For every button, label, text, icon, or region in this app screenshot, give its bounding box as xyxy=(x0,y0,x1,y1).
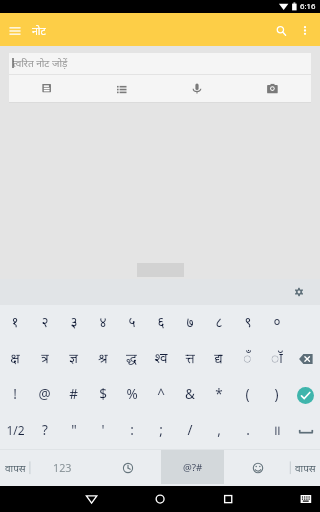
button[interactable]: Camera xyxy=(235,75,311,102)
button[interactable]: त्र xyxy=(30,341,59,377)
button[interactable]: " xyxy=(59,413,88,449)
button[interactable]: ' xyxy=(88,413,117,449)
button[interactable]: ८ xyxy=(204,305,233,341)
button[interactable]: $ xyxy=(88,377,117,413)
button[interactable]: Home xyxy=(148,487,172,511)
button[interactable]: 1/2 xyxy=(0,413,30,449)
button[interactable]: Checklist xyxy=(84,75,159,102)
staticText: : xyxy=(130,421,134,439)
button[interactable]: ७ xyxy=(175,305,204,341)
staticText: @ xyxy=(38,385,51,403)
button[interactable]: क्ष xyxy=(0,341,30,377)
staticText: ९ xyxy=(244,313,252,331)
button[interactable]: # xyxy=(59,377,88,413)
button[interactable]: Back xyxy=(80,487,104,511)
staticText: ! xyxy=(13,385,17,403)
button[interactable]: ९ xyxy=(233,305,262,341)
button[interactable]: द्ध xyxy=(117,341,146,377)
staticText: ( xyxy=(245,385,250,403)
button[interactable]: Switch keyboard xyxy=(294,487,318,511)
staticText: ७ xyxy=(186,313,194,331)
staticText: @?# xyxy=(183,461,203,474)
staticText: त्वरित नोट जोड़ें xyxy=(13,56,68,70)
staticText: ^ xyxy=(157,385,165,403)
staticText: ६ xyxy=(157,313,165,331)
staticText: ' xyxy=(101,421,105,439)
button[interactable]: ! xyxy=(0,377,30,413)
staticText: द्य xyxy=(214,349,223,367)
button[interactable]: द्य xyxy=(204,341,233,377)
button[interactable]: 123 xyxy=(30,449,95,486)
staticText: 1/2 xyxy=(6,422,25,438)
staticText: ; xyxy=(159,421,163,439)
button[interactable]: . xyxy=(233,413,262,449)
staticText: * xyxy=(215,385,223,403)
staticText: द्ध xyxy=(126,349,137,367)
button[interactable]: % xyxy=(117,377,146,413)
button[interactable]: ॉ xyxy=(262,341,291,377)
button[interactable]: , xyxy=(204,413,233,449)
staticText: ज्ञ xyxy=(69,349,78,367)
button[interactable]: Recent xyxy=(95,449,160,486)
staticText: . xyxy=(246,421,250,439)
button[interactable]: Note xyxy=(9,75,84,102)
staticText: 123 xyxy=(53,460,72,475)
button[interactable]: त्वरित नोट जोड़ें xyxy=(9,53,311,74)
button[interactable] xyxy=(291,377,320,413)
button[interactable]: : xyxy=(117,413,146,449)
button[interactable]: ^ xyxy=(146,377,175,413)
button[interactable]: Voice note xyxy=(159,75,235,102)
button[interactable]: श्व xyxy=(146,341,175,377)
button[interactable]: ँ xyxy=(233,341,262,377)
button[interactable]: १ xyxy=(0,305,30,341)
button[interactable]: Navigation menu xyxy=(3,18,27,42)
button[interactable]: वापस xyxy=(290,449,320,486)
staticText: ॥ xyxy=(272,421,281,439)
button[interactable]: Search xyxy=(268,18,292,42)
button[interactable]: More options xyxy=(293,18,317,42)
staticText: $ xyxy=(99,385,107,403)
button[interactable]: वापस xyxy=(0,449,30,486)
button[interactable]: ) xyxy=(262,377,291,413)
button[interactable]: / xyxy=(175,413,204,449)
staticText: ८ xyxy=(215,313,223,331)
button[interactable] xyxy=(291,413,320,449)
button[interactable]: Keyboard settings xyxy=(290,283,308,301)
button[interactable] xyxy=(291,341,320,377)
button[interactable]: ॥ xyxy=(262,413,291,449)
button[interactable]: ३ xyxy=(59,305,88,341)
staticText: श्र xyxy=(98,349,108,367)
staticText: " xyxy=(71,421,77,439)
button[interactable]: ६ xyxy=(146,305,175,341)
staticText: त्र xyxy=(41,349,49,367)
button[interactable]: Emoji xyxy=(225,449,290,486)
button[interactable]: त्त xyxy=(175,341,204,377)
button[interactable]: & xyxy=(175,377,204,413)
staticText: ५ xyxy=(128,313,136,331)
button[interactable]: ज्ञ xyxy=(59,341,88,377)
staticText: श्व xyxy=(154,349,168,367)
button[interactable]: @ xyxy=(30,377,59,413)
button[interactable]: श्र xyxy=(88,341,117,377)
button[interactable]: @?# xyxy=(160,449,225,486)
button[interactable]: ० xyxy=(262,305,291,341)
button[interactable]: ? xyxy=(30,413,59,449)
staticText: # xyxy=(69,385,78,403)
staticText: वापस xyxy=(5,461,26,475)
staticText: ३ xyxy=(70,313,78,331)
staticText: ॉ xyxy=(271,349,283,367)
button[interactable]: * xyxy=(204,377,233,413)
staticText: 6:16 xyxy=(300,1,316,12)
button[interactable]: Recent apps xyxy=(216,487,240,511)
button[interactable]: ( xyxy=(233,377,262,413)
button[interactable]: ५ xyxy=(117,305,146,341)
button[interactable]: ४ xyxy=(88,305,117,341)
staticText: ४ xyxy=(99,313,107,331)
button[interactable]: २ xyxy=(30,305,59,341)
staticText: ? xyxy=(42,421,48,439)
staticText: ँ xyxy=(243,349,252,367)
staticText: त्त xyxy=(185,349,195,367)
button[interactable]: ; xyxy=(146,413,175,449)
staticText: नोट xyxy=(32,24,46,38)
